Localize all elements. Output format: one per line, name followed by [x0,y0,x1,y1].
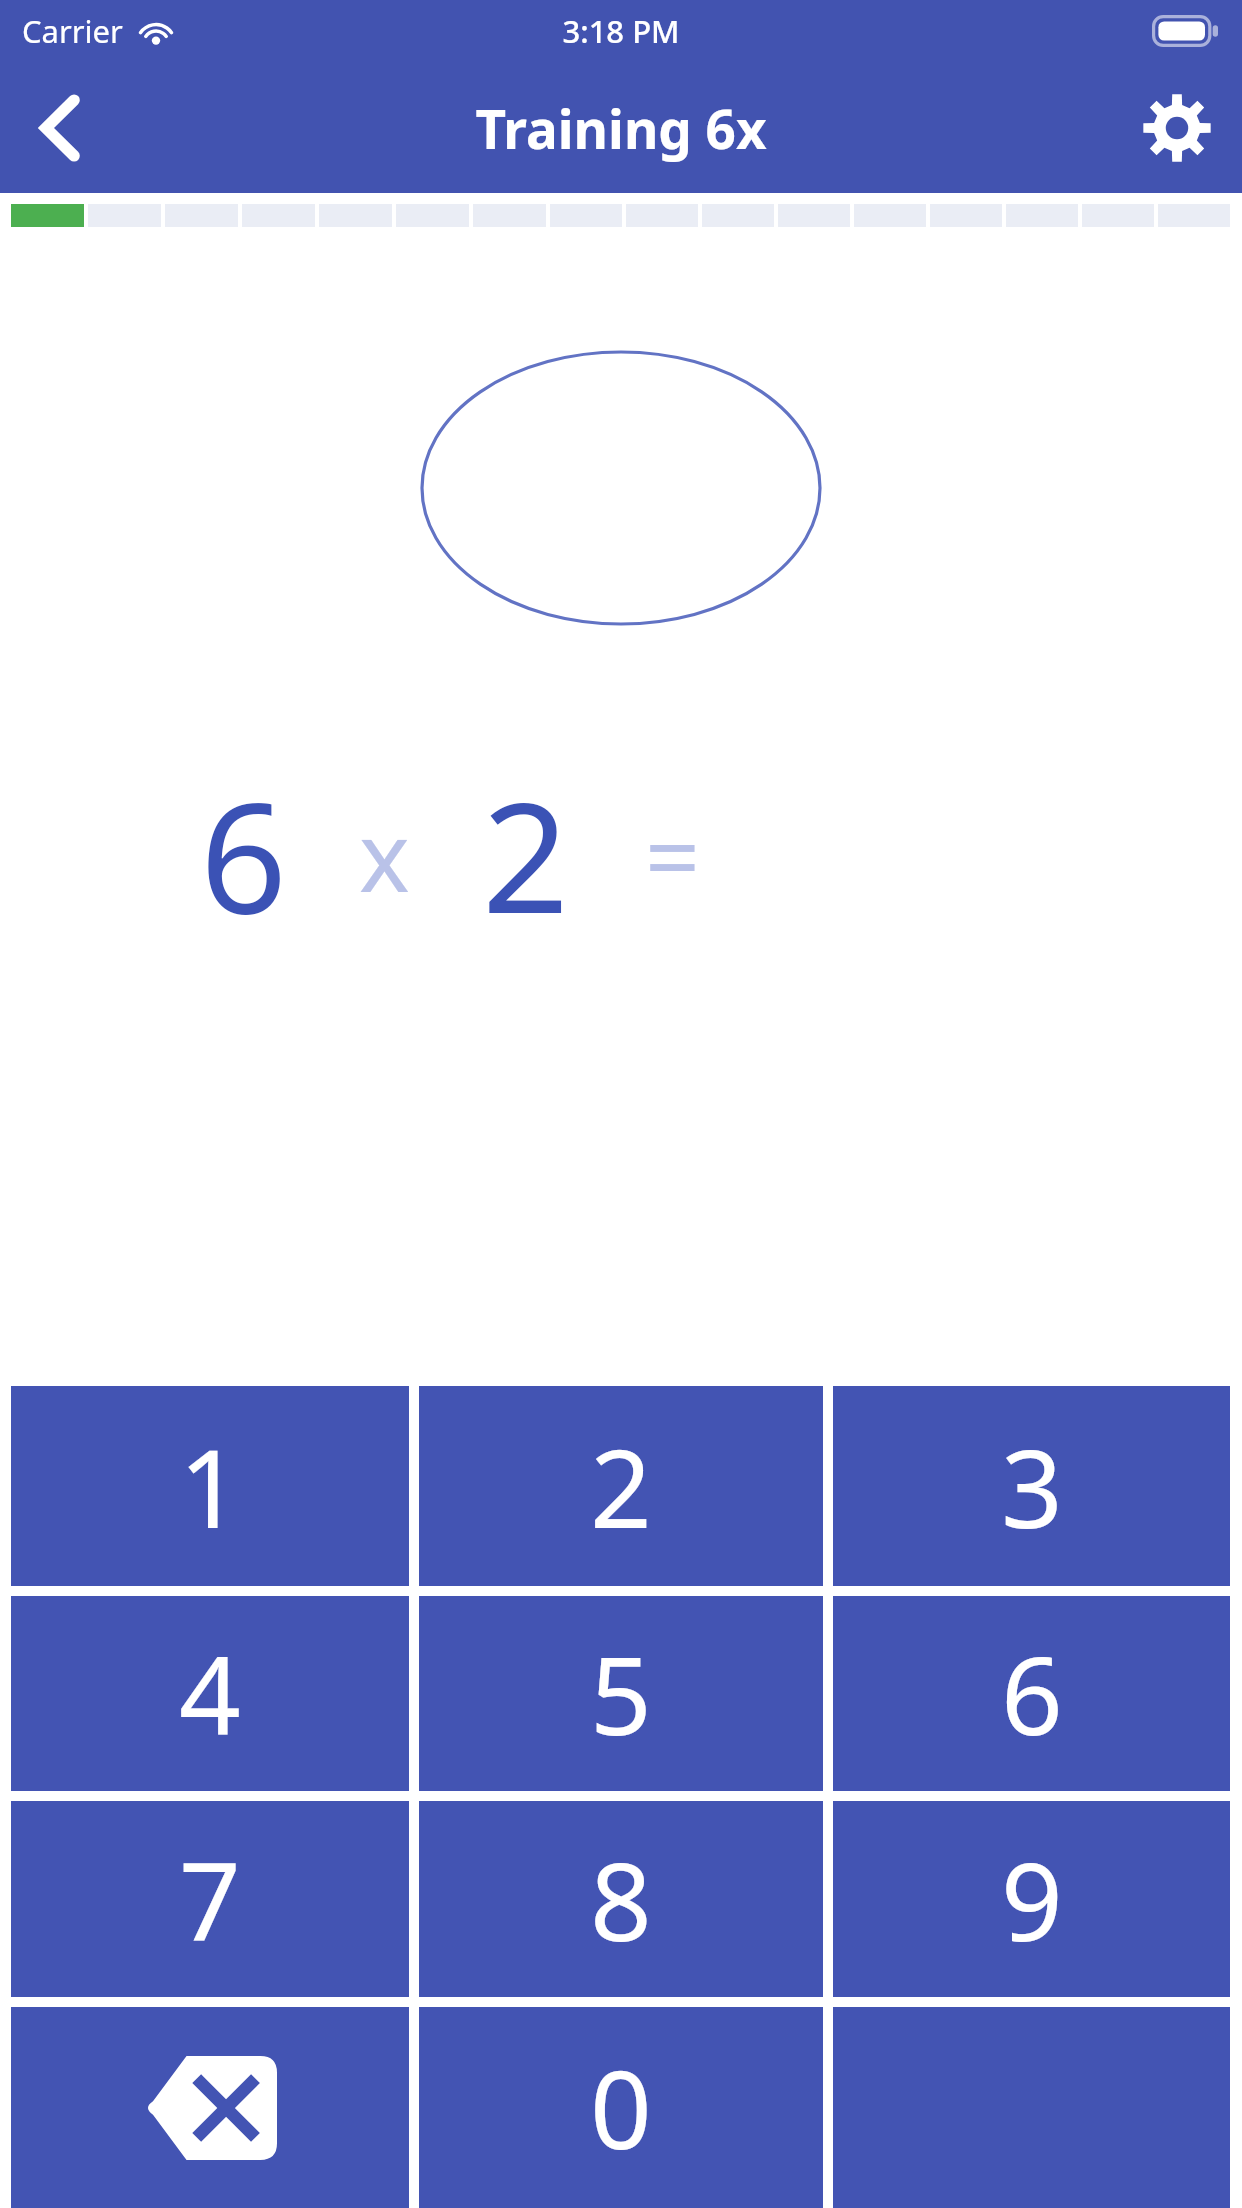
staticText: 7 [179,1826,241,1973]
staticText: 0 [590,2034,652,2181]
staticText: 2 [482,751,569,958]
staticText: = [645,789,700,920]
button[interactable]: 9 [833,1801,1230,1997]
staticText: 1 [179,1413,241,1560]
button[interactable]: 2 [419,1386,823,1586]
staticText: 9 [1001,1826,1063,1973]
button[interactable]: 4 [11,1596,409,1791]
button[interactable]: 7 [11,1801,409,1997]
staticText: 6 [1001,1620,1063,1767]
staticText: 6 [200,751,287,958]
button[interactable]: Backspace [11,2007,409,2208]
staticText: Carrier [22,10,123,52]
button[interactable]: Back [0,62,120,193]
staticText: 5 [590,1620,652,1767]
staticText: 2 [590,1413,652,1560]
staticText: 3 [1001,1413,1063,1560]
button[interactable]: 6 [833,1596,1230,1791]
staticText: x [359,789,410,920]
staticText: 3:18 PM [562,10,680,52]
button[interactable]: 8 [419,1801,823,1997]
staticText: Training 6x [475,92,767,164]
staticText: 4 [179,1620,241,1767]
button[interactable]: Settings [1112,62,1242,193]
staticText: 8 [590,1826,652,1973]
button[interactable]: 5 [419,1596,823,1791]
button[interactable]: 1 [11,1386,409,1586]
button[interactable]: 0 [419,2007,823,2208]
button[interactable]: 3 [833,1386,1230,1586]
